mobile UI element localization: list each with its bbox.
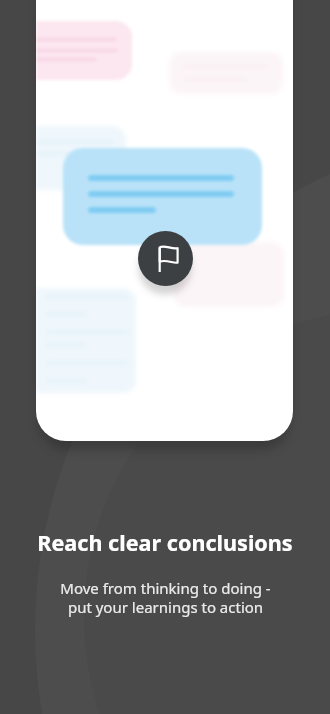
staticText: Reach clear conclusions — [37, 528, 293, 557]
button[interactable]: Flag — [138, 231, 193, 286]
staticText: Move from thinking to doing - put your l… — [60, 578, 271, 617]
